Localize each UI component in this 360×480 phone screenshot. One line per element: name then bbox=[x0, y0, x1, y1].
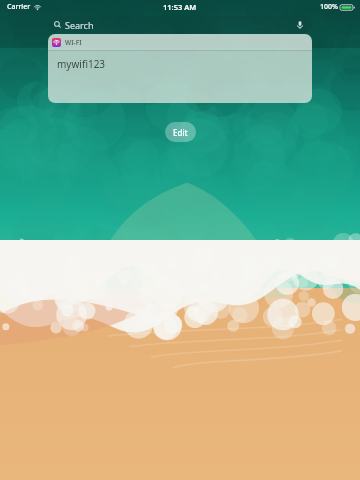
staticText: 11:53 AM bbox=[163, 2, 197, 12]
button[interactable]: WI-FI bbox=[48, 34, 312, 103]
button[interactable]: Voice search bbox=[294, 19, 306, 31]
button[interactable]: Search bbox=[48, 16, 312, 33]
button[interactable]: Edit bbox=[165, 122, 196, 142]
staticText: Search bbox=[65, 19, 94, 31]
staticText: mywifi123 bbox=[57, 57, 106, 71]
staticText: Carrier bbox=[7, 2, 31, 12]
staticText: Edit bbox=[173, 127, 188, 138]
staticText: WI-FI bbox=[65, 38, 82, 47]
staticText: 100% bbox=[320, 2, 338, 12]
